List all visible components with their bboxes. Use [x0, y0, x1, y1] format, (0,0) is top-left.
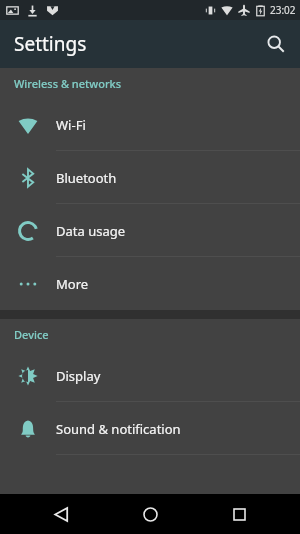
button[interactable]: Home — [122, 494, 178, 534]
staticText: Wireless & networks — [14, 76, 122, 91]
button[interactable]: Recent apps — [211, 494, 267, 534]
button[interactable]: Display — [0, 349, 300, 402]
staticText: More — [56, 275, 89, 293]
button[interactable]: Data usage — [0, 204, 300, 257]
staticText: Device — [14, 327, 49, 342]
staticText: Sound & notification — [56, 420, 181, 438]
button[interactable]: Bluetooth — [0, 151, 300, 204]
staticText: Wi-Fi — [56, 116, 86, 134]
staticText: 23:02 — [270, 3, 296, 17]
staticText: Bluetooth — [56, 169, 117, 187]
button[interactable]: More — [0, 257, 300, 310]
button[interactable]: Back — [33, 494, 89, 534]
button[interactable]: Sound & notification — [0, 402, 300, 455]
staticText: Display — [56, 367, 101, 385]
staticText: Settings — [14, 31, 87, 57]
button[interactable]: Search — [258, 26, 294, 62]
staticText: Data usage — [56, 222, 126, 240]
button[interactable]: Wi-Fi — [0, 98, 300, 151]
